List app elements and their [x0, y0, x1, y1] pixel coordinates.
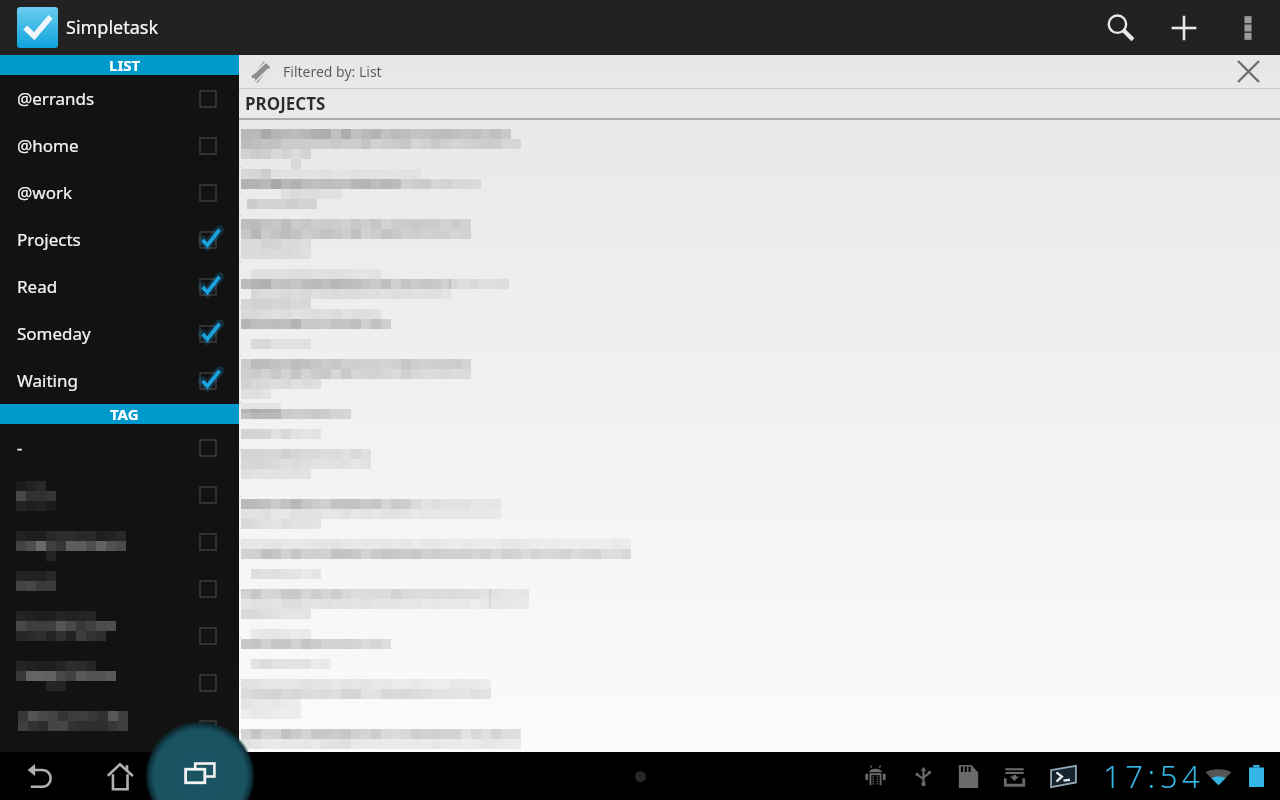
button[interactable]: Search [1088, 0, 1152, 55]
button[interactable] [239, 214, 1280, 261]
button[interactable]: Simpletask [17, 7, 58, 48]
button[interactable]: Clear filter [1216, 55, 1280, 88]
button[interactable] [239, 261, 1280, 308]
button[interactable]: Projects [0, 216, 239, 263]
button[interactable]: Unchecked [0, 565, 239, 612]
button[interactable] [239, 496, 1280, 543]
staticText: @errands [17, 87, 95, 110]
button[interactable]: @errands [0, 75, 239, 122]
button[interactable]: Home [80, 752, 160, 800]
button[interactable]: Unchecked [0, 706, 239, 752]
button[interactable] [239, 543, 1280, 590]
button[interactable]: Add task [1152, 0, 1216, 55]
staticText: Waiting [17, 369, 78, 392]
button[interactable]: Checked [193, 366, 223, 396]
button[interactable]: More options [1216, 0, 1280, 55]
button[interactable]: @home [0, 122, 239, 169]
button[interactable]: Unchecked [193, 527, 223, 557]
button[interactable]: Recent apps [160, 752, 240, 800]
button[interactable]: Unchecked [0, 612, 239, 659]
button[interactable]: Unchecked [193, 131, 223, 161]
button[interactable]: Checked [193, 272, 223, 302]
button[interactable]: Unchecked [193, 574, 223, 604]
staticText: - [17, 436, 23, 459]
button[interactable]: Filtered by: List [239, 55, 1216, 88]
button[interactable]: Someday [0, 310, 239, 357]
staticText: Someday [17, 322, 91, 345]
button[interactable]: Unchecked [0, 659, 239, 706]
staticText: Filtered by: List [283, 62, 382, 81]
button[interactable] [239, 167, 1280, 214]
button[interactable] [239, 637, 1280, 684]
staticText: 17:54 [1103, 755, 1205, 797]
button[interactable]: Read [0, 263, 239, 310]
button[interactable]: Waiting [0, 357, 239, 404]
staticText: Simpletask [66, 15, 159, 40]
button[interactable] [239, 731, 1280, 752]
button[interactable]: Unchecked [0, 518, 239, 565]
button[interactable]: Unchecked [193, 84, 223, 114]
button[interactable]: Checked [193, 319, 223, 349]
staticText: @work [17, 181, 73, 204]
staticText: PROJECTS [245, 92, 326, 115]
staticText: TAG [110, 404, 139, 424]
button[interactable]: Unchecked [193, 480, 223, 510]
button[interactable]: @work [0, 169, 239, 216]
button[interactable]: Unchecked [193, 178, 223, 208]
button[interactable] [239, 449, 1280, 496]
button[interactable]: Checked [193, 225, 223, 255]
button[interactable] [239, 684, 1280, 731]
button[interactable] [239, 120, 1280, 167]
staticText: Read [17, 275, 58, 298]
button[interactable]: Unchecked [0, 471, 239, 518]
button[interactable]: Unchecked [193, 668, 223, 698]
button[interactable]: Unchecked [193, 714, 223, 744]
button[interactable] [239, 590, 1280, 637]
button[interactable]: Unchecked [193, 621, 223, 651]
staticText: Projects [17, 228, 81, 251]
button[interactable]: Back [0, 752, 80, 800]
button[interactable]: - [0, 424, 239, 471]
button[interactable]: Unchecked [193, 433, 223, 463]
button[interactable]: PROJECTS [239, 89, 1280, 118]
staticText: @home [17, 134, 79, 157]
staticText: LIST [109, 55, 141, 75]
button[interactable] [239, 402, 1280, 449]
button[interactable] [239, 308, 1280, 355]
button[interactable] [239, 355, 1280, 402]
